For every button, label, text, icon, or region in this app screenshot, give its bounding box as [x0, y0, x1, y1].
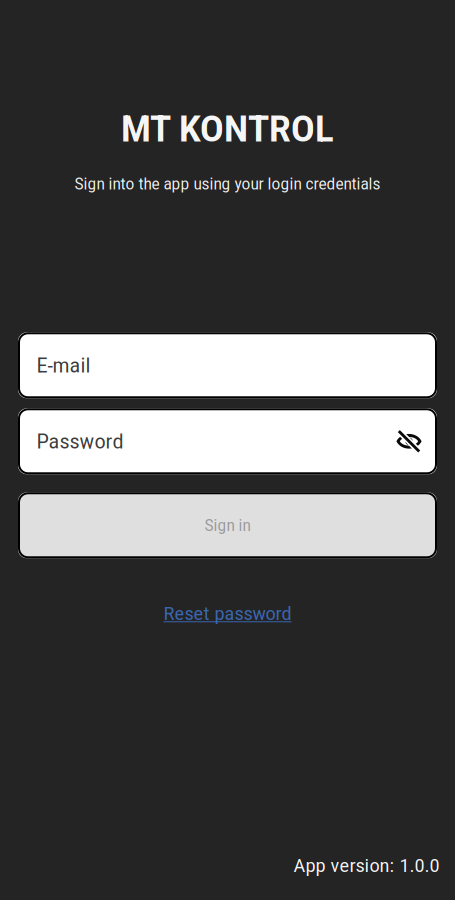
staticText: Password	[36, 429, 123, 453]
button[interactable]: Sign in	[18, 492, 437, 558]
staticText: E-mail	[36, 353, 90, 377]
staticText: MT KONTROL	[121, 107, 334, 150]
button[interactable]: E-mail	[18, 332, 437, 398]
button[interactable]: Password	[18, 408, 437, 474]
staticText: App version: 1.0.0	[293, 854, 439, 877]
staticText: Reset password	[163, 602, 291, 625]
button[interactable]: Reset password	[163, 602, 291, 625]
staticText: Sign into the app using your login crede…	[74, 174, 380, 193]
staticText: Sign in	[204, 516, 250, 535]
